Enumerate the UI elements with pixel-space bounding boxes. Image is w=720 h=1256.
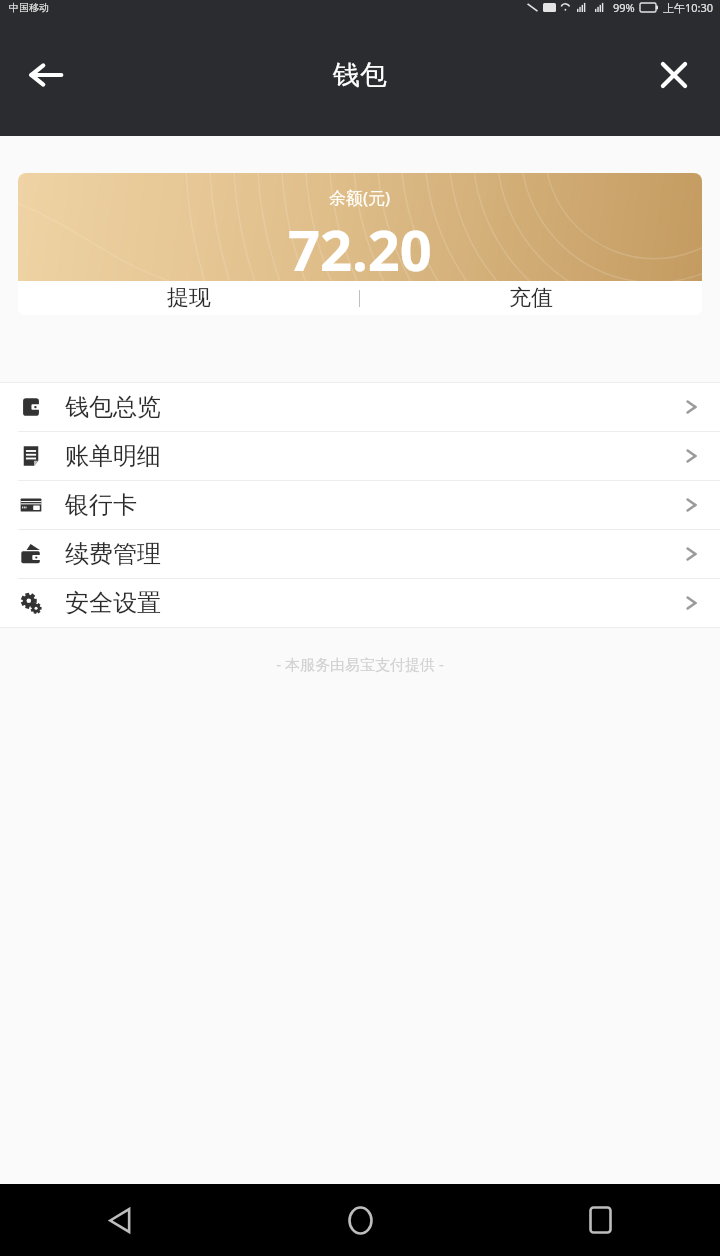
button[interactable]: 钱包总览: [0, 383, 720, 431]
button[interactable]: 提现: [18, 281, 359, 315]
staticText: 72.20: [288, 211, 432, 281]
staticText: 钱包总览: [65, 392, 161, 422]
staticText: 安全设置: [65, 588, 161, 618]
button[interactable]: Back: [0, 1184, 240, 1256]
button[interactable]: 续费管理: [0, 530, 720, 578]
button[interactable]: 账单明细: [0, 432, 720, 480]
button[interactable]: 充值: [360, 281, 702, 315]
staticText: 99%: [613, 0, 635, 14]
staticText: 充值: [509, 284, 553, 312]
button[interactable]: 银行卡: [0, 481, 720, 529]
staticText: 提现: [167, 284, 211, 312]
staticText: 余额(元): [329, 186, 391, 209]
staticText: 续费管理: [65, 539, 161, 569]
staticText: - 本服务由易宝支付提供 -: [0, 654, 720, 674]
staticText: 钱包: [333, 58, 387, 92]
staticText: 银行卡: [65, 490, 137, 520]
staticText: 上午10:30: [663, 0, 714, 14]
button[interactable]: Home: [240, 1184, 480, 1256]
button[interactable]: 安全设置: [0, 579, 720, 627]
staticText: 账单明细: [65, 441, 161, 471]
staticText: 中国移动: [9, 1, 49, 14]
button[interactable]: Recent apps: [480, 1184, 720, 1256]
button[interactable]: Back: [14, 43, 78, 107]
button[interactable]: Close: [642, 43, 706, 107]
